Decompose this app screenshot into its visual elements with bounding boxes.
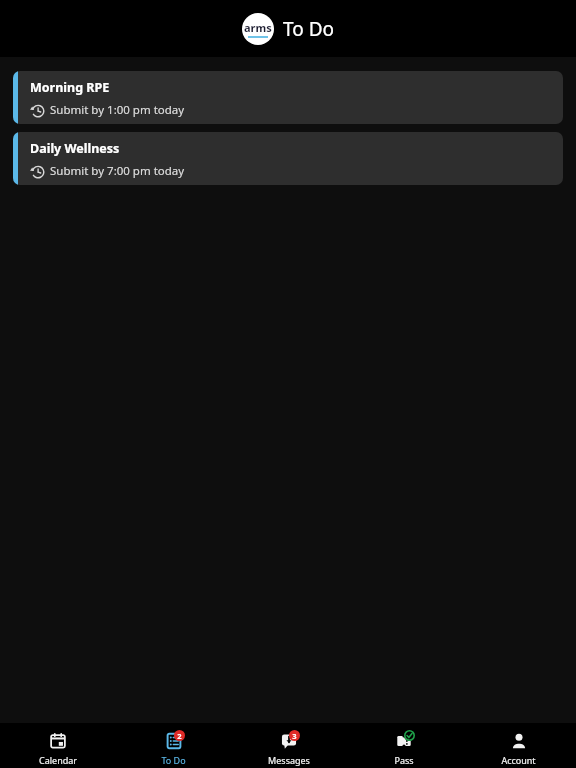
staticText: arms bbox=[244, 20, 272, 35]
button[interactable]: Daily Wellness bbox=[13, 132, 563, 185]
button[interactable]: Morning RPE bbox=[13, 71, 563, 124]
staticText: Morning RPE bbox=[30, 79, 110, 96]
staticText: 2 bbox=[177, 731, 182, 741]
staticText: Pass bbox=[394, 754, 414, 766]
button[interactable]: 3 bbox=[231, 723, 346, 768]
staticText: To Do bbox=[161, 754, 186, 766]
staticText: Submit by 1:00 pm today bbox=[50, 102, 185, 118]
staticText: Calendar bbox=[39, 754, 77, 766]
button[interactable]: 2 bbox=[116, 723, 231, 768]
staticText: Daily Wellness bbox=[30, 140, 120, 157]
button[interactable]: Account bbox=[461, 723, 576, 768]
button[interactable]: Calendar bbox=[0, 723, 116, 768]
staticText: 3 bbox=[292, 731, 297, 741]
staticText: Account bbox=[501, 754, 536, 766]
staticText: Messages bbox=[268, 754, 310, 766]
staticText: To Do bbox=[283, 16, 335, 42]
staticText: Submit by 7:00 pm today bbox=[50, 163, 185, 179]
button[interactable]: Pass bbox=[346, 723, 461, 768]
